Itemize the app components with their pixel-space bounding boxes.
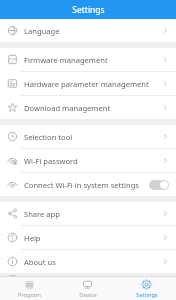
- button[interactable]: Language: [0, 19, 176, 42]
- button[interactable]: About us: [0, 250, 176, 273]
- button[interactable]: Selection tool: [0, 125, 176, 148]
- staticText: Settings: [136, 291, 158, 299]
- button[interactable]: Toggle connect Wi-Fi in system settings: [149, 180, 169, 190]
- staticText: Selection tool: [24, 132, 162, 142]
- button[interactable]: Firmware management: [0, 48, 176, 71]
- button[interactable]: Share app: [0, 202, 176, 225]
- staticText: About us: [24, 257, 162, 267]
- staticText: Language: [24, 26, 162, 36]
- staticText: Share app: [24, 209, 162, 219]
- button[interactable]: Connect Wi-Fi in system settings: [0, 173, 176, 196]
- staticText: Wi-Fi password: [24, 156, 162, 166]
- button[interactable]: Wi-Fi password: [0, 149, 176, 172]
- button[interactable]: Settings: [117, 277, 176, 300]
- button[interactable]: Help: [0, 226, 176, 249]
- staticText: Device: [79, 291, 97, 299]
- staticText: Firmware management: [24, 55, 162, 65]
- staticText: Download management: [24, 103, 162, 113]
- staticText: Program: [18, 291, 41, 299]
- staticText: Help: [24, 233, 162, 243]
- button[interactable]: Hardware parameter management: [0, 72, 176, 95]
- button[interactable]: Device: [58, 277, 117, 300]
- button[interactable]: Program: [0, 277, 58, 300]
- staticText: Settings: [72, 4, 105, 16]
- button[interactable]: Download management: [0, 96, 176, 119]
- staticText: Connect Wi-Fi in system settings: [24, 180, 149, 190]
- staticText: Hardware parameter management: [24, 79, 162, 89]
